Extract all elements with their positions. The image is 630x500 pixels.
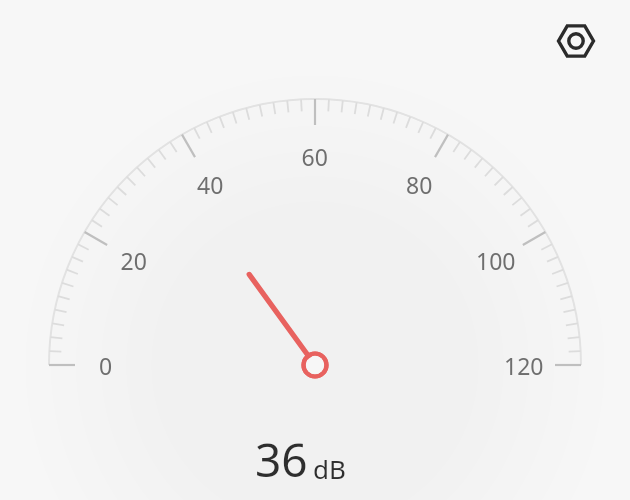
- button[interactable]: Settings: [552, 17, 600, 65]
- staticText: dB: [313, 451, 346, 486]
- staticText: 36: [255, 428, 308, 491]
